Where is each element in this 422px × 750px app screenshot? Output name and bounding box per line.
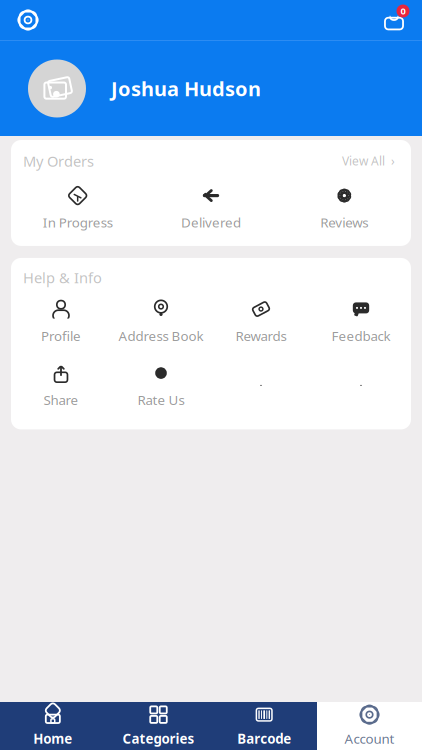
- staticText: In Progress: [43, 214, 113, 231]
- staticText: Joshua Hudson: [111, 75, 261, 102]
- staticText: Categories: [122, 730, 194, 747]
- staticText: Rate Us: [137, 391, 184, 409]
- staticText: Delivered: [181, 214, 241, 231]
- staticText: Rewards: [235, 327, 286, 345]
- button[interactable]: Settings: [8, 3, 48, 37]
- staticText: View All ›: [342, 153, 395, 169]
- staticText: Feedback: [331, 327, 390, 345]
- button[interactable]: Barcode: [211, 702, 317, 750]
- button[interactable]: Address Book: [111, 291, 211, 351]
- button[interactable]: Rewards: [211, 291, 311, 351]
- button[interactable]: Account: [317, 702, 422, 750]
- staticText: Account: [344, 730, 394, 747]
- staticText: My Orders: [23, 151, 94, 171]
- staticText: Reviews: [320, 214, 368, 231]
- staticText: 0: [400, 5, 405, 17]
- button[interactable]: In Progress: [11, 178, 144, 238]
- button[interactable]: View All ›: [338, 150, 399, 172]
- button[interactable]: Delivered: [144, 178, 278, 238]
- button[interactable]: Home: [0, 702, 106, 750]
- staticText: Share: [43, 391, 78, 409]
- staticText: Barcode: [237, 730, 291, 747]
- staticText: Address Book: [118, 327, 203, 345]
- button[interactable]: Share: [11, 355, 111, 415]
- staticText: Home: [33, 730, 72, 747]
- button[interactable]: Feedback: [311, 291, 411, 351]
- button[interactable]: Rate Us: [111, 355, 211, 415]
- button[interactable]: Categories: [106, 702, 211, 750]
- staticText: Help & Info: [23, 268, 102, 287]
- button[interactable]: Profile: [11, 291, 111, 351]
- button[interactable]: Cart: [374, 3, 414, 37]
- staticText: Profile: [41, 327, 81, 345]
- button[interactable]: Reviews: [278, 178, 411, 238]
